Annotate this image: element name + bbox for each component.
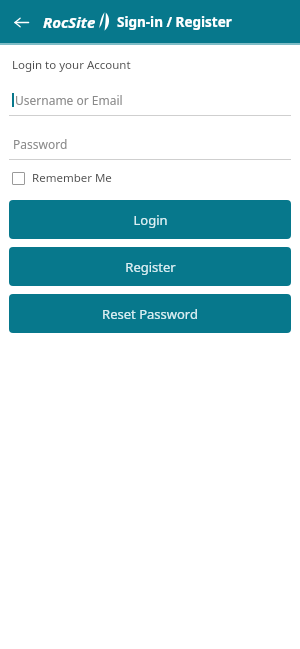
staticText: Remember Me — [32, 170, 112, 186]
staticText: Reset Password — [102, 305, 198, 323]
button[interactable]: Password — [9, 134, 291, 160]
button[interactable]: Remember Me — [9, 168, 112, 188]
staticText: RocSite — [43, 12, 96, 32]
staticText: Username or Email — [15, 92, 123, 108]
staticText: Sign-in / Register — [117, 13, 232, 31]
staticText: Login — [133, 211, 168, 229]
staticText: Login to your Account — [12, 57, 131, 73]
button[interactable]: Login — [9, 200, 291, 239]
button[interactable]: Username or Email — [9, 90, 291, 116]
staticText: Password — [13, 136, 68, 152]
button[interactable]: Back — [9, 10, 33, 34]
staticText: Register — [125, 258, 176, 276]
button[interactable]: Reset Password — [9, 294, 291, 333]
button[interactable]: Register — [9, 247, 291, 286]
